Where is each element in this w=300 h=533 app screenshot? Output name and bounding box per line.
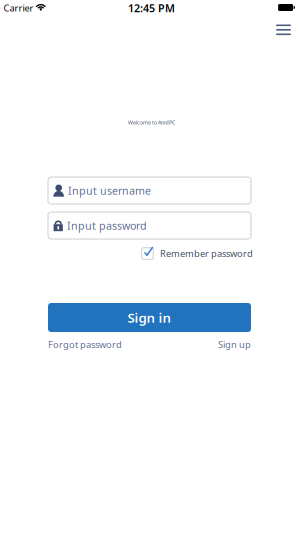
- button[interactable]: Remember password: [141, 247, 253, 260]
- button[interactable]: Forgot password: [48, 338, 122, 351]
- staticText: Forgot password: [48, 338, 122, 351]
- staticText: Carrier: [3, 2, 33, 14]
- button[interactable]: Menu: [270, 18, 297, 41]
- staticText: Sign up: [218, 338, 251, 351]
- staticText: 12:45 PM: [128, 1, 175, 15]
- button[interactable]: Sign up: [218, 338, 251, 351]
- staticText: Welcome to AnnIPC: [128, 119, 175, 126]
- staticText: Remember password: [160, 247, 253, 260]
- button[interactable]: Sign in: [48, 303, 251, 332]
- staticText: Sign in: [127, 309, 171, 326]
- staticText: Input password: [67, 218, 147, 233]
- staticText: Input username: [68, 183, 151, 198]
